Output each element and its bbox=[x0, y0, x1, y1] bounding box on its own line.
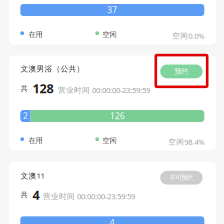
staticText: 不可预约 bbox=[169, 174, 193, 182]
staticText: 在用 bbox=[28, 30, 42, 39]
staticText: 在用 bbox=[28, 136, 42, 145]
staticText: 空闲 bbox=[103, 30, 117, 39]
staticText: 126 bbox=[110, 110, 125, 122]
staticText: 2 bbox=[23, 110, 28, 122]
staticText: 营业时间 00:00:00-23:59:59 bbox=[58, 85, 150, 95]
staticText: 空闲98.4% bbox=[168, 136, 204, 147]
staticText: 共 bbox=[20, 84, 27, 93]
staticText: 文澳11 bbox=[20, 170, 44, 181]
staticText: 37 bbox=[107, 4, 117, 16]
staticText: 空闲0.0% bbox=[172, 30, 204, 41]
staticText: 共 bbox=[20, 190, 27, 199]
staticText: 4 bbox=[110, 216, 115, 224]
staticText: 预约 bbox=[174, 67, 188, 76]
staticText: 空闲 bbox=[103, 136, 117, 145]
button[interactable]: 不可预约 bbox=[160, 171, 203, 185]
button[interactable]: 预约 bbox=[160, 64, 203, 78]
staticText: 128 bbox=[32, 80, 53, 97]
staticText: 4 bbox=[32, 186, 39, 203]
staticText: 文澳男浴（公共） bbox=[20, 64, 84, 74]
staticText: 营业时间 00:00:00-23:59:59 bbox=[43, 191, 135, 201]
